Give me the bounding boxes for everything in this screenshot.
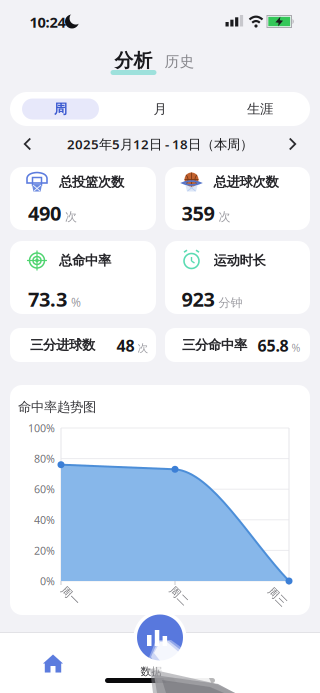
staticText: 48	[116, 335, 134, 356]
staticText: 总投篮次数	[59, 174, 124, 190]
staticText: 次	[65, 209, 77, 224]
staticText: 10:24	[29, 12, 65, 32]
button[interactable]: 生涯	[210, 92, 310, 126]
staticText: 命中率趋势图	[18, 399, 96, 415]
button[interactable]: 下一周	[277, 129, 307, 159]
staticText: 100%	[28, 421, 55, 435]
staticText: 三分进球数	[30, 337, 95, 353]
staticText: 周一	[59, 589, 81, 602]
button[interactable]: 首页	[25, 640, 81, 688]
staticText: %	[291, 340, 300, 355]
staticText: 三分命中率	[182, 337, 247, 353]
staticText: 分析	[114, 49, 152, 72]
button[interactable]: 上一周	[12, 129, 42, 159]
staticText: 分钟	[218, 295, 242, 310]
staticText: 20%	[34, 543, 55, 558]
staticText: 周二	[168, 589, 190, 602]
button[interactable]: 分析	[105, 43, 161, 77]
button[interactable]: 周	[10, 92, 110, 126]
button[interactable]: 数据	[133, 611, 186, 664]
staticText: 总进球次数	[213, 174, 278, 190]
staticText: 490	[28, 200, 61, 226]
staticText: 总命中率	[59, 252, 111, 269]
staticText: 2025年5月12日 - 18日（本周）	[67, 135, 253, 153]
staticText: 359	[181, 200, 214, 226]
staticText: 周三	[266, 590, 288, 603]
staticText: 运动时长	[213, 252, 265, 269]
staticText: 0%	[40, 574, 55, 588]
staticText: 60%	[34, 482, 55, 496]
staticText: %	[71, 294, 81, 310]
staticText: 生涯	[247, 101, 273, 117]
staticText: 40%	[34, 513, 55, 527]
button[interactable]: 月	[110, 92, 210, 126]
button[interactable]: 历史	[159, 46, 199, 76]
staticText: 历史	[164, 52, 194, 70]
staticText: 次	[137, 342, 148, 355]
staticText: 月	[153, 101, 166, 117]
staticText: 次	[218, 209, 230, 224]
staticText: 923	[181, 286, 214, 312]
staticText: 73.3	[28, 286, 67, 312]
staticText: 80%	[34, 451, 55, 466]
staticText: 数据	[140, 665, 162, 678]
staticText: 65.8	[257, 335, 288, 356]
staticText: 周	[54, 101, 67, 117]
